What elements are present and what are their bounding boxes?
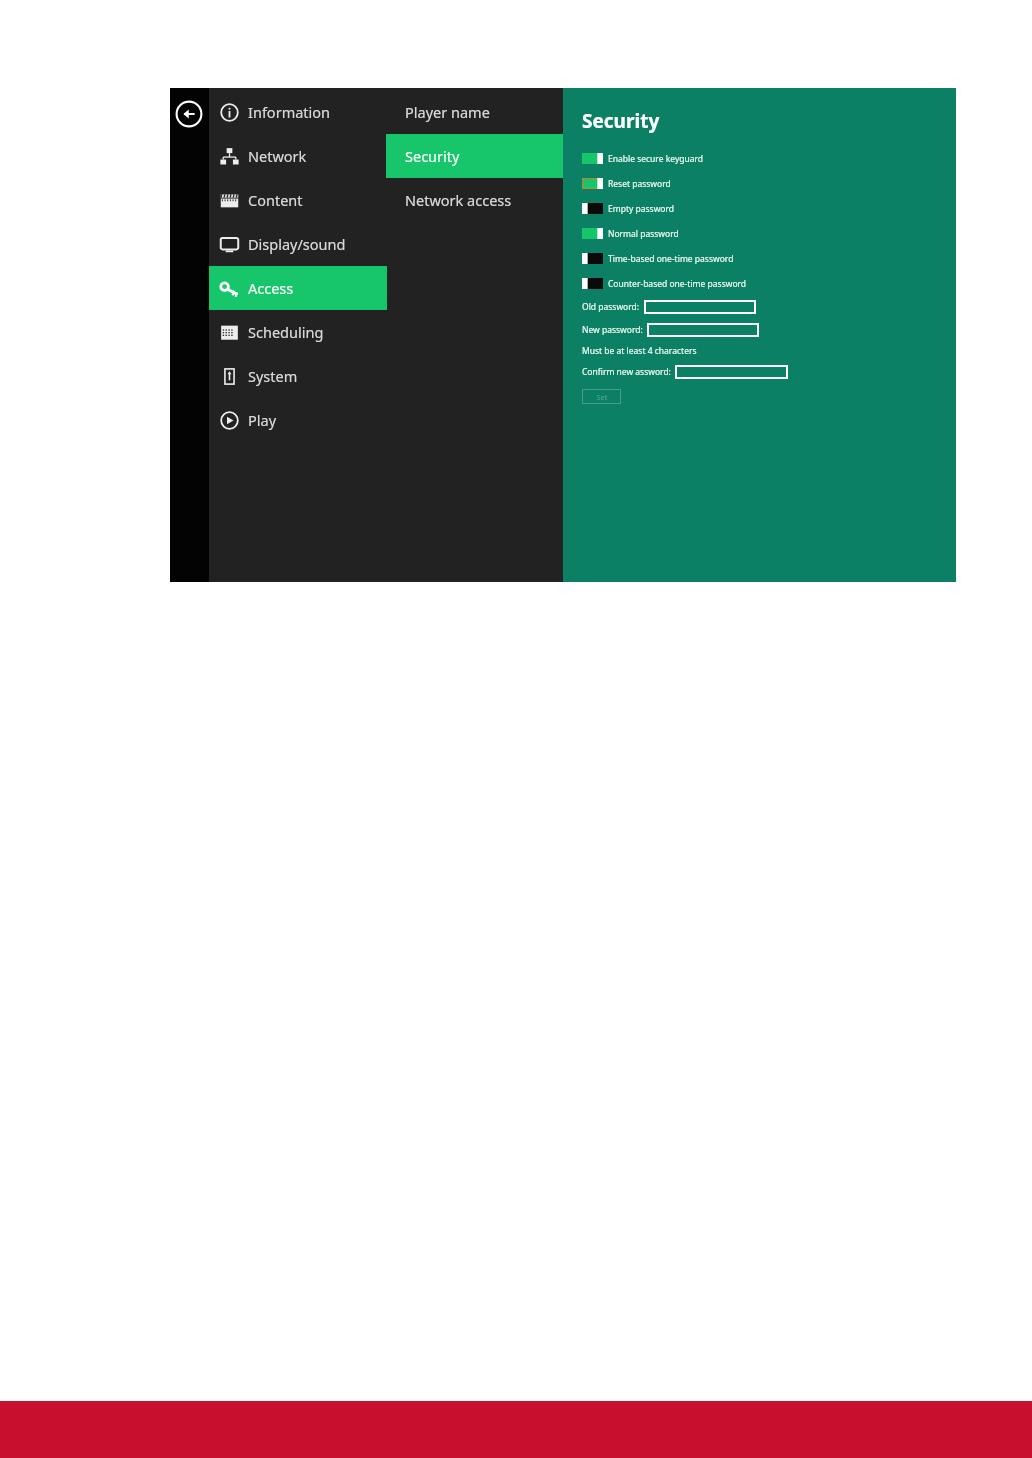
staticText: Scheduling bbox=[248, 322, 324, 342]
button[interactable]: Back bbox=[175, 100, 203, 128]
staticText: Counter-based one-time password bbox=[608, 278, 747, 290]
staticText: Content bbox=[248, 190, 303, 210]
staticText: Access bbox=[248, 278, 294, 298]
button[interactable]: Network bbox=[209, 134, 387, 178]
staticText: Information bbox=[248, 102, 331, 122]
button[interactable]: System bbox=[209, 354, 387, 398]
staticText: Old password: bbox=[582, 301, 640, 313]
button[interactable]: Reset password bbox=[582, 171, 671, 196]
button[interactable]: Player name bbox=[386, 90, 563, 134]
button[interactable]: Empty password bbox=[582, 196, 675, 221]
staticText: Player name bbox=[405, 102, 490, 122]
staticText: Set bbox=[596, 392, 608, 402]
staticText: Normal password bbox=[608, 228, 679, 240]
button[interactable] bbox=[647, 323, 759, 337]
staticText: New password: bbox=[582, 324, 643, 336]
staticText: Must be at least 4 characters bbox=[582, 345, 697, 357]
staticText: Enable secure keyguard bbox=[608, 153, 704, 165]
staticText: Security bbox=[405, 146, 460, 166]
staticText: Reset password bbox=[608, 178, 671, 190]
button[interactable]: Normal password bbox=[582, 221, 679, 246]
button[interactable]: Time-based one-time password bbox=[582, 246, 734, 271]
button[interactable]: Display/sound bbox=[209, 222, 387, 266]
button[interactable]: Scheduling bbox=[209, 310, 387, 354]
staticText: Network access bbox=[405, 190, 512, 210]
button[interactable]: Access bbox=[209, 266, 387, 310]
staticText: Empty password bbox=[608, 203, 675, 215]
staticText: Time-based one-time password bbox=[608, 253, 734, 265]
button[interactable] bbox=[675, 365, 788, 379]
button[interactable]: Enable secure keyguard bbox=[582, 146, 704, 171]
button[interactable]: Security bbox=[386, 134, 563, 178]
button[interactable]: Content bbox=[209, 178, 387, 222]
button[interactable]: Counter-based one-time password bbox=[582, 271, 747, 296]
staticText: Confirm new assword: bbox=[582, 366, 671, 378]
staticText: Display/sound bbox=[248, 234, 346, 254]
button[interactable]: Information bbox=[209, 90, 387, 134]
staticText: Network bbox=[248, 146, 307, 166]
button[interactable] bbox=[644, 300, 756, 314]
staticText: Security bbox=[582, 108, 660, 134]
staticText: System bbox=[248, 366, 298, 386]
button[interactable]: Play bbox=[209, 398, 387, 442]
staticText: Play bbox=[248, 410, 277, 430]
button[interactable]: Set bbox=[582, 389, 621, 404]
button[interactable]: Network access bbox=[386, 178, 563, 222]
